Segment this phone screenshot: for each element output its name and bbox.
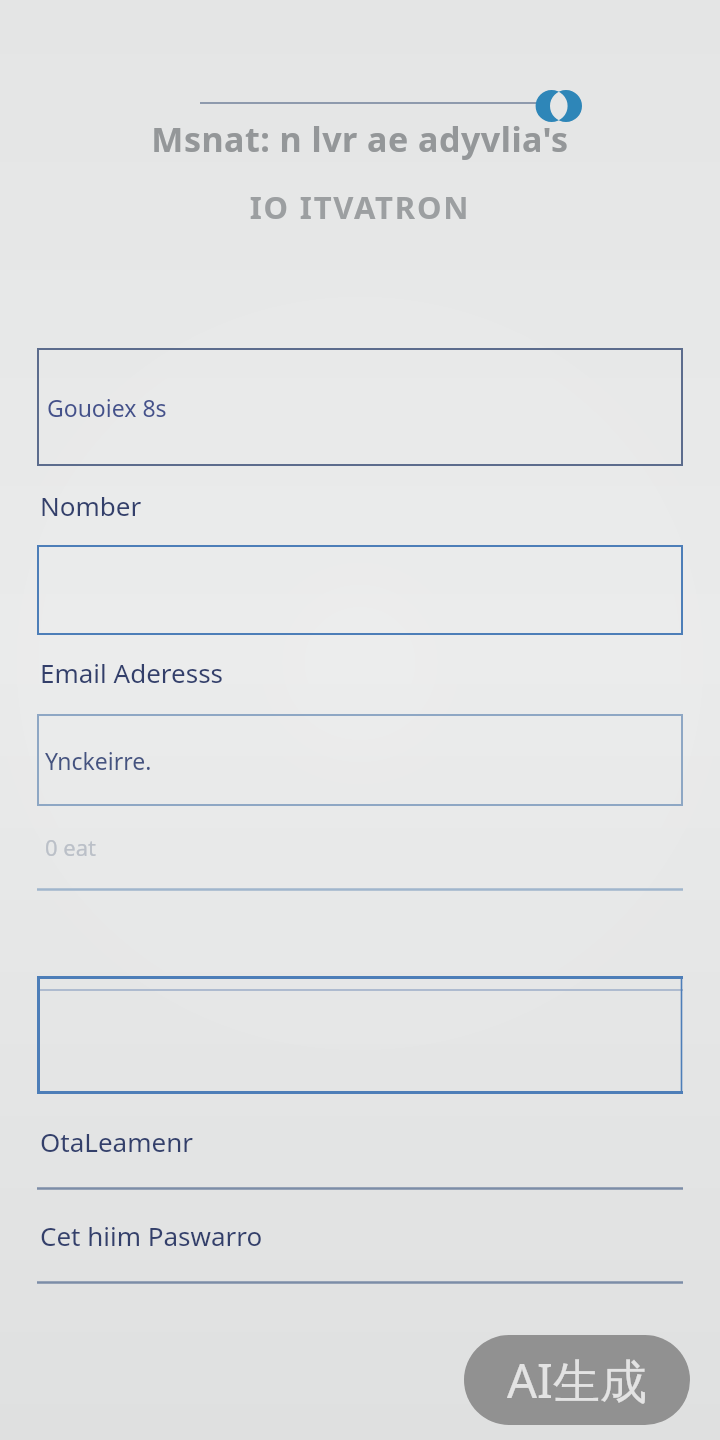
button[interactable]: Gouoiex 8s — [37, 348, 683, 466]
staticText: IO ITVATRON — [0, 186, 720, 228]
button[interactable]: Cet hiim Paswarro — [37, 1218, 683, 1284]
staticText: 0 eat — [45, 832, 96, 862]
button[interactable]: OtaLeamenr — [37, 1124, 683, 1190]
staticText: Msnat: n lvr ae adyvlia's — [0, 116, 720, 162]
staticText: Email Aderesss — [40, 655, 224, 690]
staticText: Ynckeirre. — [45, 745, 152, 776]
staticText: Cet hiim Paswarro — [40, 1218, 263, 1253]
button[interactable] — [37, 888, 683, 976]
button[interactable] — [37, 545, 683, 635]
staticText: AI生成 — [507, 1348, 647, 1412]
button[interactable] — [37, 976, 683, 1094]
staticText: OtaLeamenr — [40, 1124, 193, 1159]
staticText: Gouoiex 8s — [47, 392, 167, 423]
other: AI generated watermark — [464, 1335, 690, 1425]
staticText: Nomber — [40, 488, 142, 523]
button[interactable]: Ynckeirre. — [37, 714, 683, 806]
